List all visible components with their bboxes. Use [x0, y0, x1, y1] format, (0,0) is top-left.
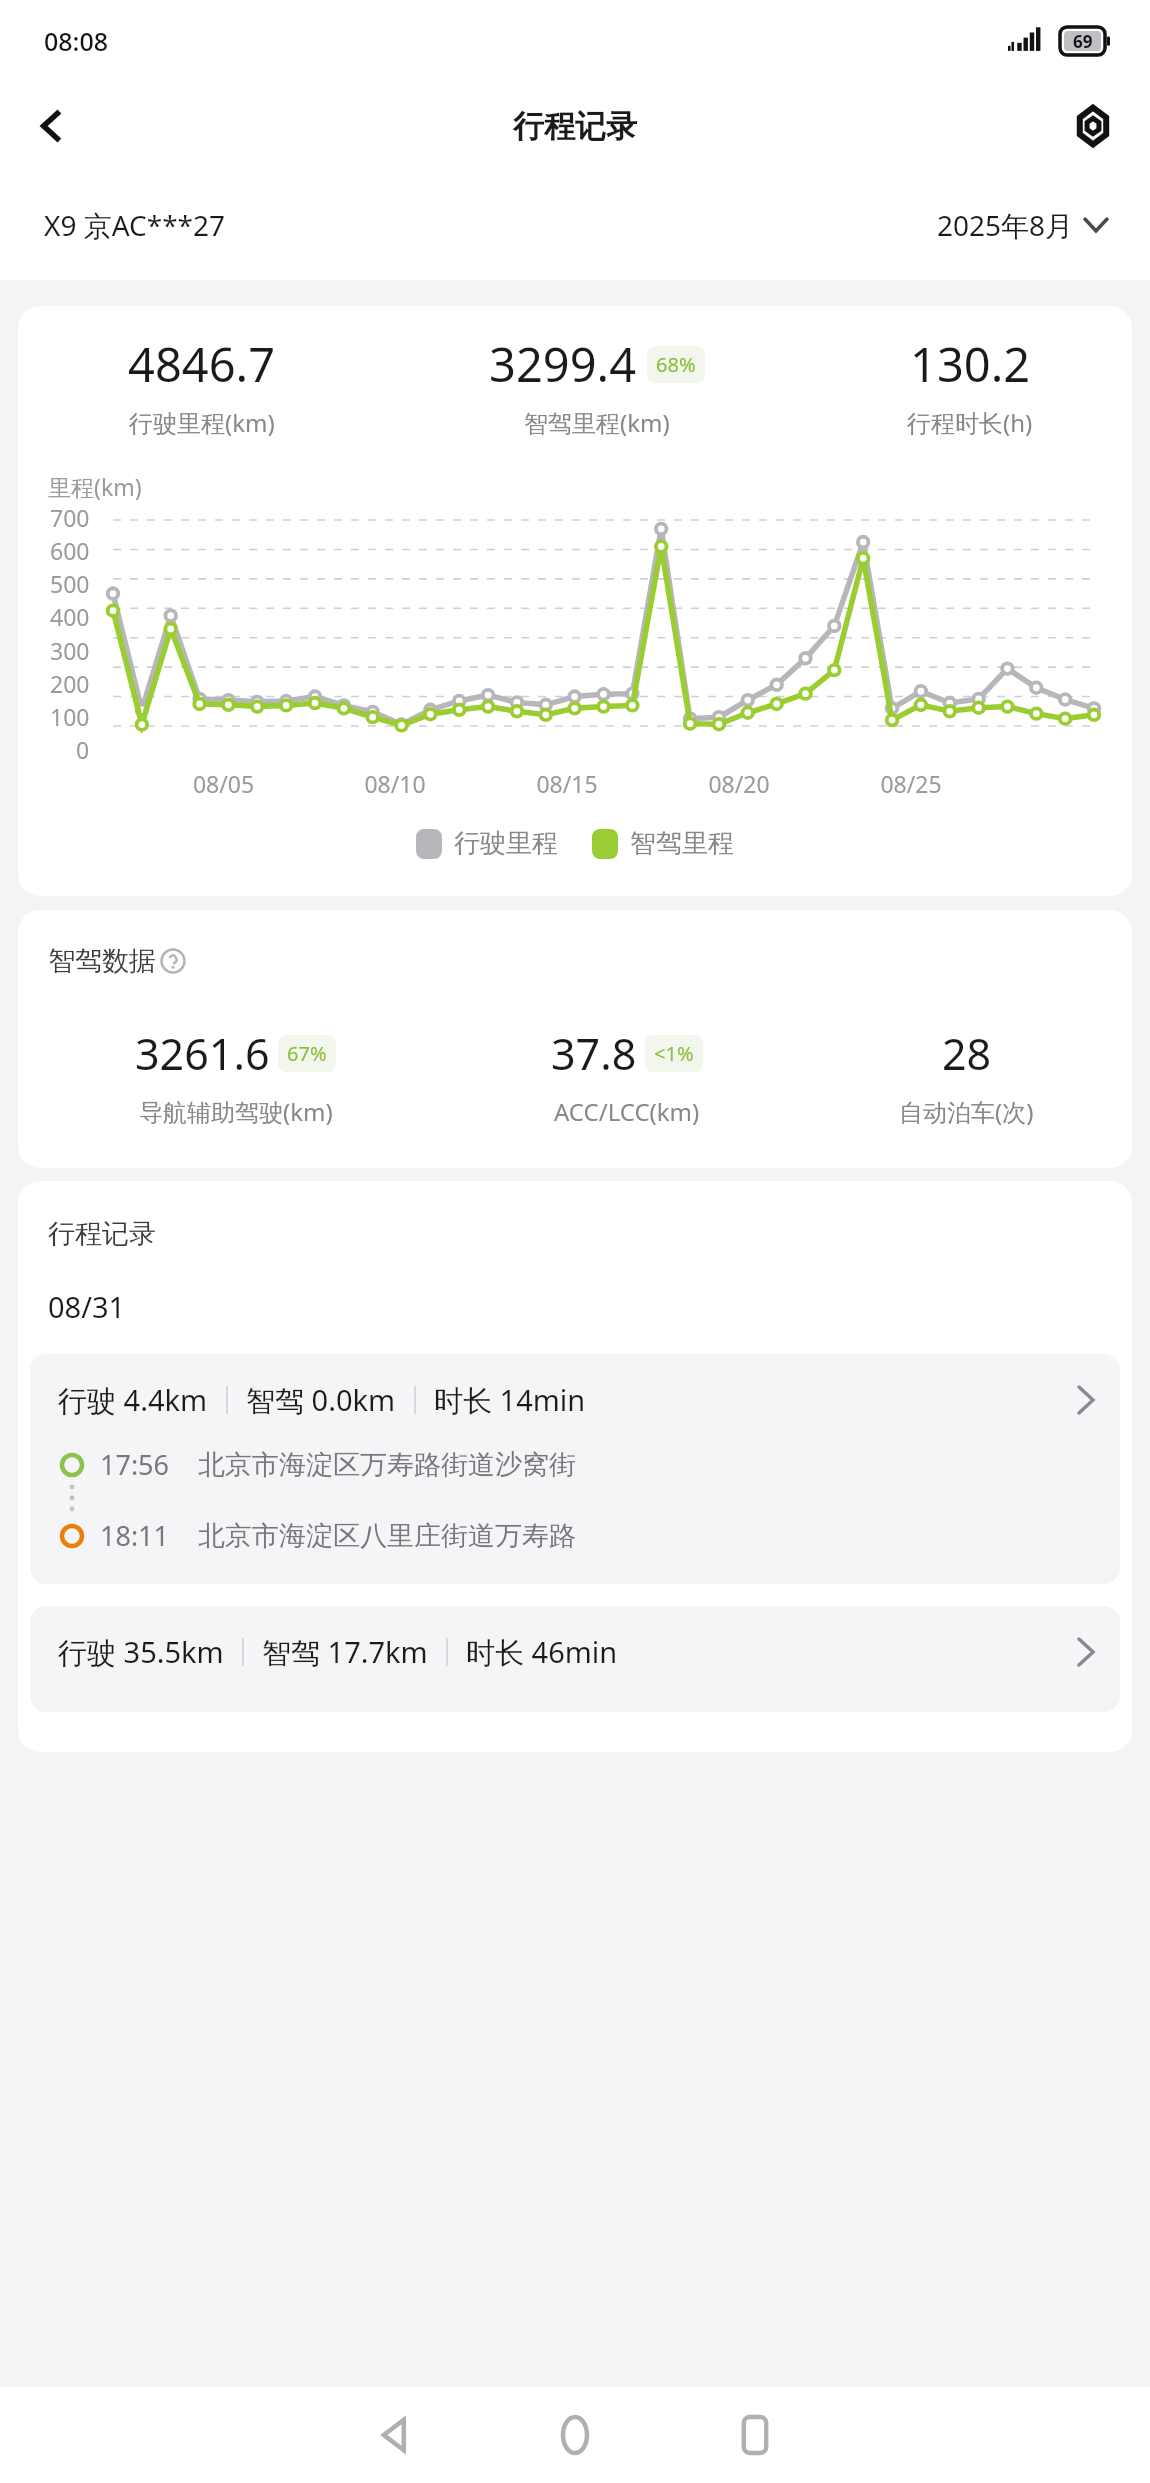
- staticText: 智驾里程: [630, 827, 734, 860]
- button[interactable]: 2025年8月: [933, 202, 1112, 248]
- staticText: ACC/LCC(km): [554, 1095, 700, 1128]
- staticText: 500: [50, 568, 90, 596]
- staticText: 智驾 17.7km: [262, 1632, 428, 1672]
- staticText: 北京市海淀区八里庄街道万寿路: [198, 1519, 576, 1553]
- staticText: 自动泊车(次): [899, 1095, 1034, 1128]
- staticText: 18:11: [100, 1517, 170, 1554]
- staticText: 行驶里程: [454, 827, 558, 860]
- staticText: 北京市海淀区万寿路街道沙窝街: [198, 1448, 576, 1482]
- staticText: 600: [50, 535, 90, 563]
- staticText: 2025年8月: [937, 206, 1074, 244]
- staticText: 300: [50, 635, 90, 663]
- staticText: 400: [50, 601, 90, 629]
- staticText: 智驾 0.0km: [246, 1380, 396, 1420]
- staticText: 200: [50, 668, 90, 696]
- staticText: X9 京AC***27: [44, 206, 226, 244]
- staticText: 08/05: [138, 768, 309, 799]
- staticText: 时长 14min: [434, 1380, 586, 1420]
- staticText: 700: [50, 502, 90, 530]
- staticText: 行程记录: [48, 1217, 156, 1251]
- staticText: 130.2: [910, 332, 1031, 396]
- staticText: 行程时长(h): [907, 406, 1033, 439]
- staticText: 行驶 4.4km: [58, 1380, 208, 1420]
- staticText: 08/31: [48, 1287, 126, 1326]
- staticText: 3299.4: [489, 332, 637, 396]
- staticText: 0: [76, 734, 90, 762]
- staticText: <1%: [654, 1040, 694, 1067]
- staticText: 17:56: [100, 1446, 170, 1483]
- staticText: 行驶 35.5km: [58, 1632, 224, 1672]
- button[interactable]: Settings: [1062, 95, 1124, 157]
- staticText: 69: [1073, 30, 1093, 53]
- button[interactable]: 智驾数据: [48, 944, 186, 978]
- staticText: 智驾里程(km): [524, 406, 670, 439]
- button[interactable]: Home: [520, 2387, 630, 2483]
- staticText: 28: [942, 1024, 992, 1083]
- staticText: 08/15: [481, 768, 653, 799]
- staticText: 37.8: [551, 1024, 637, 1083]
- staticText: 时长 46min: [466, 1632, 618, 1672]
- staticText: 导航辅助驾驶(km): [139, 1095, 333, 1128]
- staticText: 67%: [287, 1040, 327, 1067]
- button[interactable]: 行驶 4.4km: [30, 1354, 1120, 1584]
- staticText: 行驶里程(km): [129, 406, 275, 439]
- staticText: 100: [50, 701, 90, 729]
- staticText: 08:08: [44, 24, 109, 58]
- staticText: 68%: [656, 351, 696, 378]
- button[interactable]: Back: [340, 2387, 450, 2483]
- staticText: 08/20: [653, 768, 825, 799]
- button[interactable]: 行驶 35.5km: [30, 1606, 1120, 1712]
- staticText: 3261.6: [135, 1024, 270, 1083]
- button[interactable]: Recent apps: [700, 2387, 810, 2483]
- staticText: 里程(km): [48, 471, 142, 502]
- staticText: 行程记录: [513, 107, 637, 146]
- staticText: 08/25: [825, 768, 997, 799]
- staticText: 08/10: [309, 768, 481, 799]
- button[interactable]: Back: [22, 96, 82, 156]
- staticText: 4846.7: [128, 332, 276, 396]
- staticText: 智驾数据: [48, 944, 156, 978]
